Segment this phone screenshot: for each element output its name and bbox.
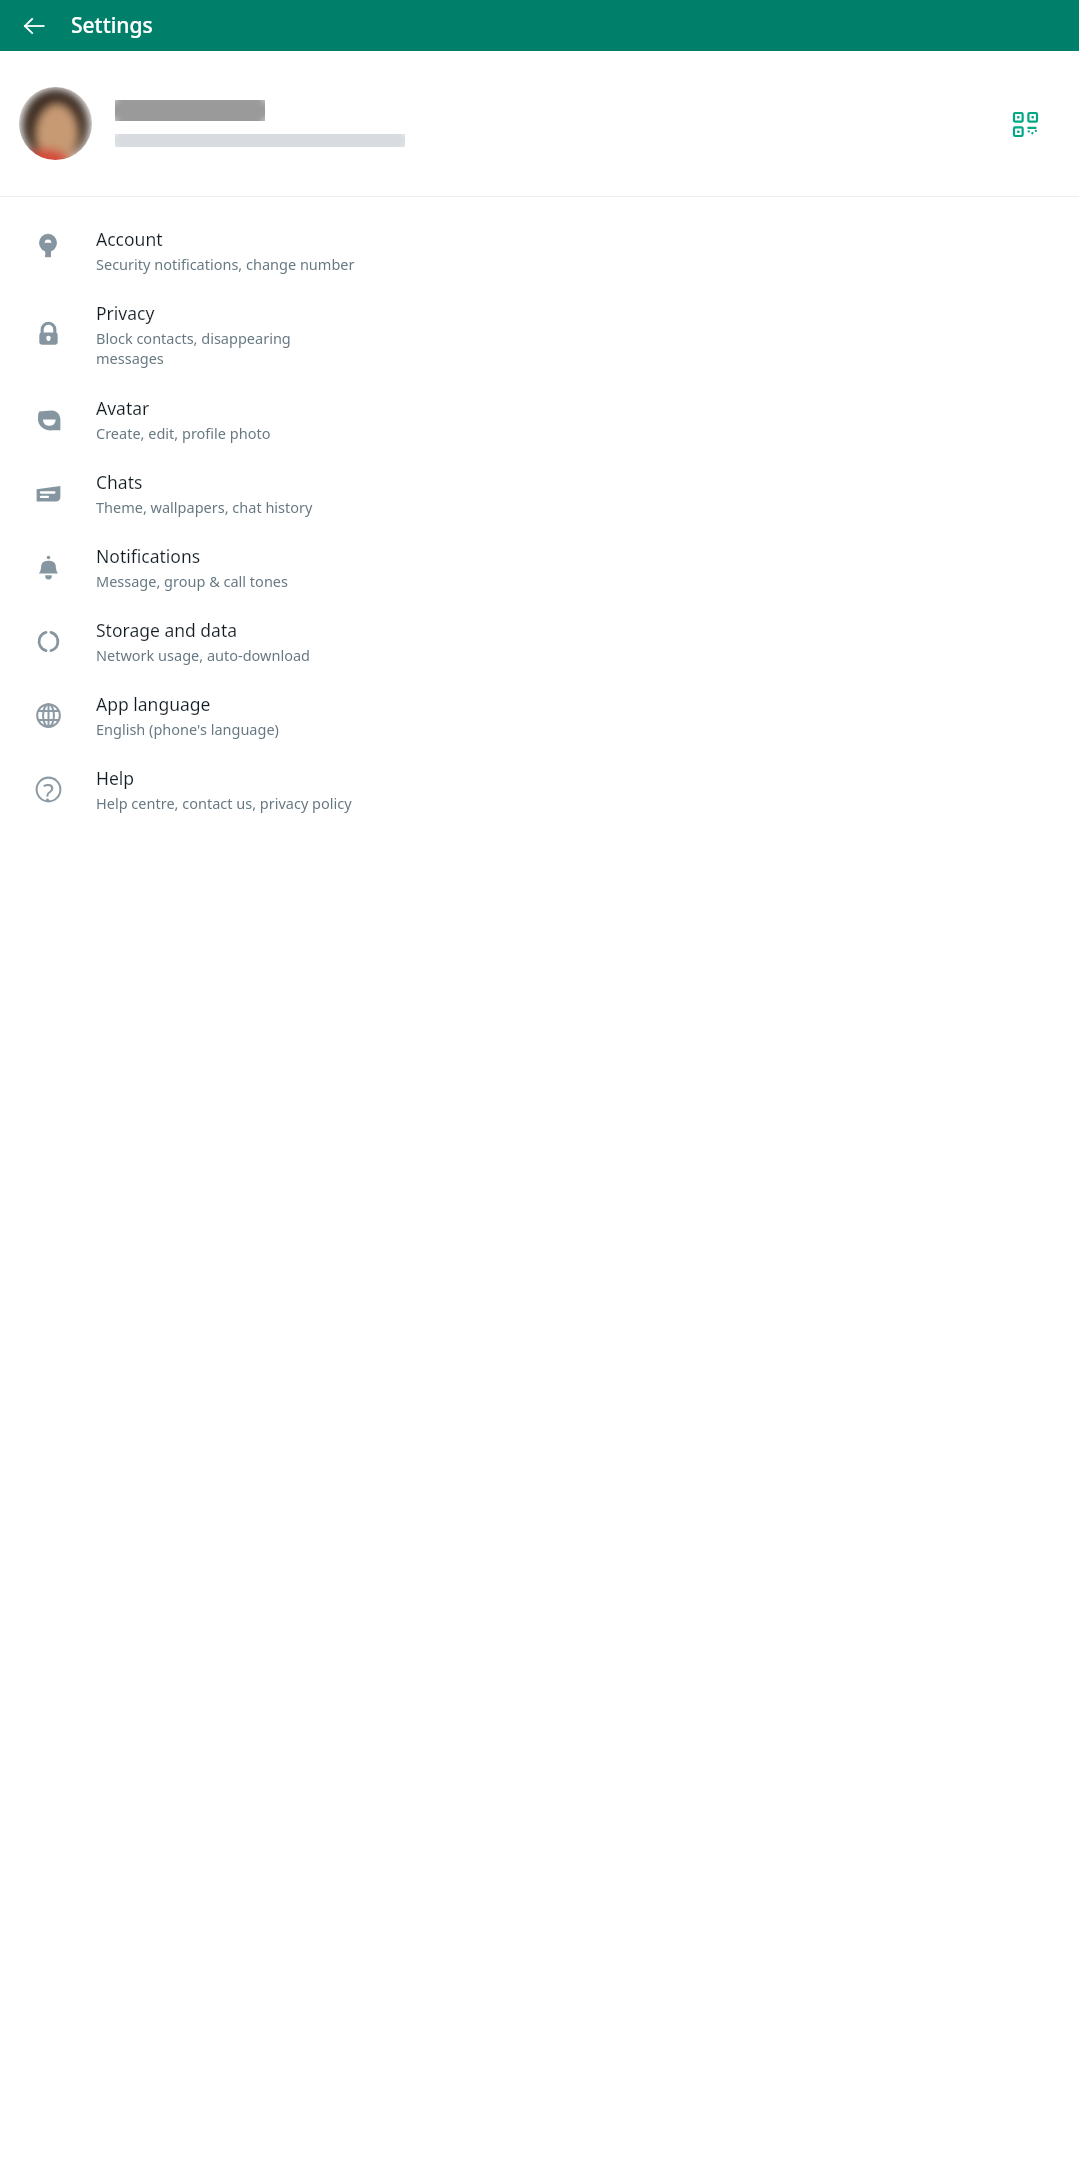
staticText: Account (96, 227, 163, 251)
staticText: Help centre, contact us, privacy policy (96, 793, 352, 813)
staticText: Message, group & call tones (96, 571, 288, 591)
staticText: ? (43, 775, 54, 802)
button[interactable]: Back (10, 2, 58, 50)
staticText: Notifications (96, 544, 201, 568)
staticText: English (phone's language) (96, 719, 279, 739)
staticText: Block contacts, disappearing messages (96, 328, 291, 368)
staticText: Privacy (96, 301, 155, 325)
button[interactable]: Avatar (0, 382, 1079, 456)
button[interactable]: App language (0, 678, 1079, 752)
button[interactable]: QR code (1001, 100, 1049, 148)
staticText: Storage and data (96, 618, 238, 642)
staticText: Theme, wallpapers, chat history (96, 497, 313, 517)
staticText: Chats (96, 470, 143, 494)
staticText: Avatar (96, 396, 150, 420)
button[interactable]: Account (0, 213, 1079, 287)
staticText: Network usage, auto-download (96, 645, 310, 665)
button[interactable]: Storage and data (0, 604, 1079, 678)
staticText: Create, edit, profile photo (96, 423, 271, 443)
button[interactable]: QR code (0, 51, 1079, 196)
staticText: Settings (71, 11, 153, 40)
button[interactable]: Privacy (0, 287, 1079, 382)
staticText: Help (96, 766, 135, 790)
button[interactable]: Chats (0, 456, 1079, 530)
staticText: Security notifications, change number (96, 254, 355, 274)
staticText: App language (96, 692, 211, 716)
button[interactable]: Notifications (0, 530, 1079, 604)
button[interactable]: ? (0, 752, 1079, 826)
